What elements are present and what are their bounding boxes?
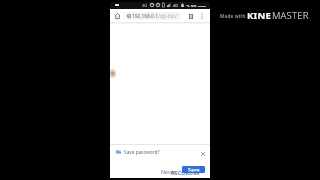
button[interactable]: 192.168.0.1 xyxy=(124,12,181,20)
staticText: Save password? xyxy=(124,149,160,156)
staticText: Never xyxy=(161,168,176,175)
staticText: 192.168.0.1 xyxy=(132,13,158,20)
button[interactable]: Tab switcher xyxy=(186,11,196,21)
button[interactable]: Home xyxy=(112,11,122,21)
staticText: KINE xyxy=(247,9,272,22)
button[interactable]: Save xyxy=(182,166,205,173)
staticText: /cgi-bin/luci/ xyxy=(158,13,179,20)
staticText: Made with xyxy=(220,13,247,19)
button[interactable]: Close xyxy=(198,149,207,158)
staticText: 2:30 pm xyxy=(186,3,207,7)
staticText: RECORDER xyxy=(171,169,200,177)
staticText: Save xyxy=(188,166,200,173)
staticText: MASTER xyxy=(272,9,309,22)
button[interactable]: Never xyxy=(159,166,178,177)
staticText: 4G xyxy=(173,3,179,7)
staticText: 3G xyxy=(142,3,148,7)
button[interactable]: More options xyxy=(198,12,206,20)
